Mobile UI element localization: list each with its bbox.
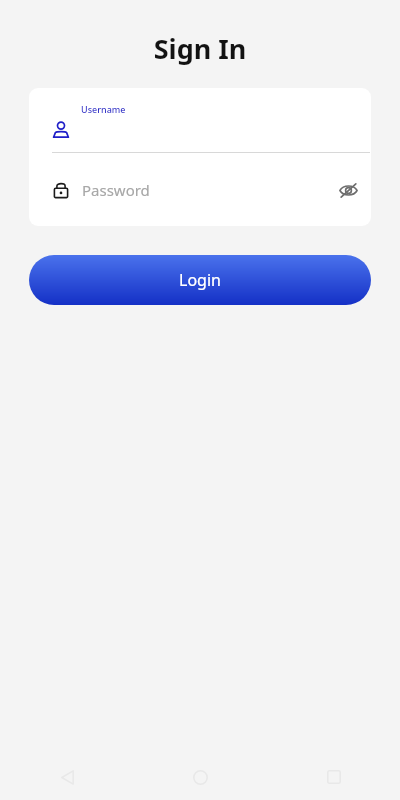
button[interactable]: Username — [29, 88, 371, 152]
button[interactable]: Password — [29, 153, 371, 226]
button[interactable]: Show password — [331, 173, 365, 207]
staticText: Sign In — [0, 30, 400, 67]
staticText: Password — [82, 180, 150, 200]
staticText: Login — [179, 269, 221, 291]
staticText: Username — [81, 103, 126, 115]
button[interactable]: Login — [29, 255, 371, 305]
